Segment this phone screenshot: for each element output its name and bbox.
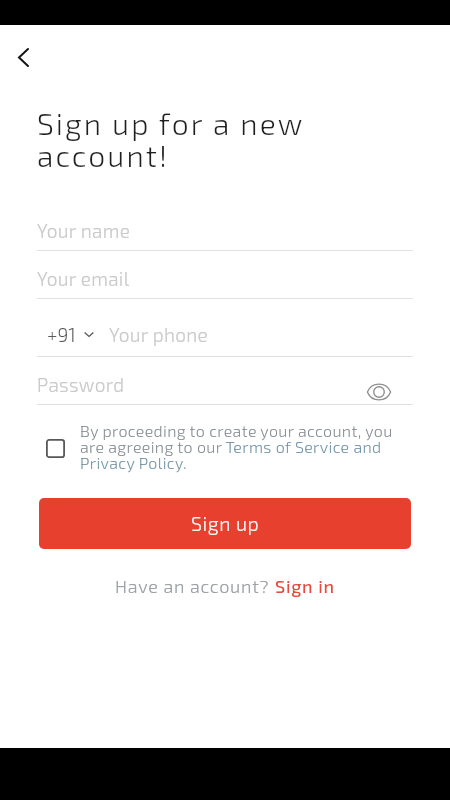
staticText: +91: [47, 323, 76, 346]
button[interactable]: Your name: [37, 203, 413, 251]
button[interactable]: Sign up: [39, 498, 411, 549]
button[interactable]: Accept terms: [46, 439, 65, 458]
button[interactable]: By proceeding to create your account, yo…: [80, 421, 400, 472]
button[interactable]: Password: [37, 364, 413, 404]
button[interactable]: +91: [47, 323, 94, 346]
button[interactable]: Show password: [362, 375, 396, 409]
staticText: Have an account?: [115, 575, 275, 597]
button[interactable]: Your email: [37, 251, 413, 299]
staticText: Sign up for a new account!: [37, 105, 413, 173]
staticText: Your name: [37, 219, 131, 242]
button[interactable]: Have an account?: [115, 575, 335, 597]
staticText: Your email: [37, 267, 130, 290]
button[interactable]: Back: [5, 39, 41, 75]
staticText: Sign up: [191, 512, 260, 535]
staticText: Your phone: [109, 323, 208, 346]
button[interactable]: Your phone: [109, 323, 413, 346]
staticText: Sign in: [275, 575, 335, 597]
staticText: Password: [37, 373, 125, 396]
staticText: By proceeding to create your account, yo…: [80, 421, 400, 472]
